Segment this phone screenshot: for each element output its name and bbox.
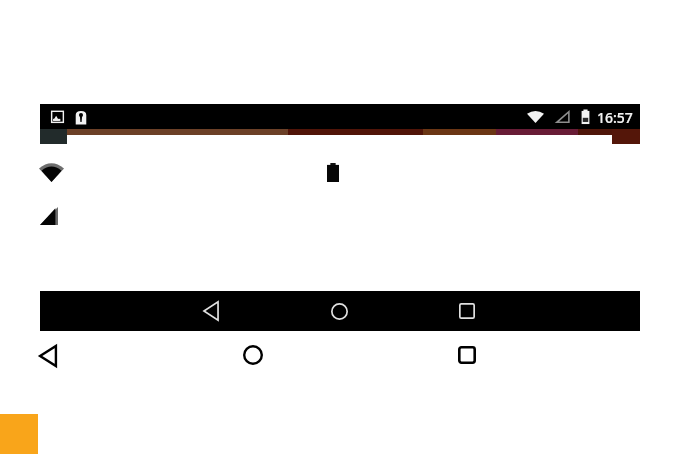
other: Wi-Fi bbox=[39, 162, 64, 182]
staticText: 16:57 bbox=[597, 108, 633, 127]
other: Mobile signal bbox=[556, 111, 570, 123]
button[interactable]: Home bbox=[259, 291, 419, 331]
button[interactable]: Back bbox=[39, 345, 57, 367]
other: Battery bbox=[327, 163, 339, 182]
other: Mobile signal bbox=[40, 207, 58, 225]
other: Screenshot captured bbox=[51, 110, 64, 123]
other: Wi-Fi connected bbox=[527, 111, 544, 123]
button[interactable]: Back bbox=[131, 291, 291, 331]
other: Battery level bbox=[579, 109, 592, 125]
button[interactable]: Recent apps bbox=[387, 291, 547, 331]
button[interactable]: Home bbox=[243, 345, 263, 365]
other: Screen locked bbox=[75, 110, 87, 125]
button[interactable]: Recent apps bbox=[458, 346, 476, 364]
